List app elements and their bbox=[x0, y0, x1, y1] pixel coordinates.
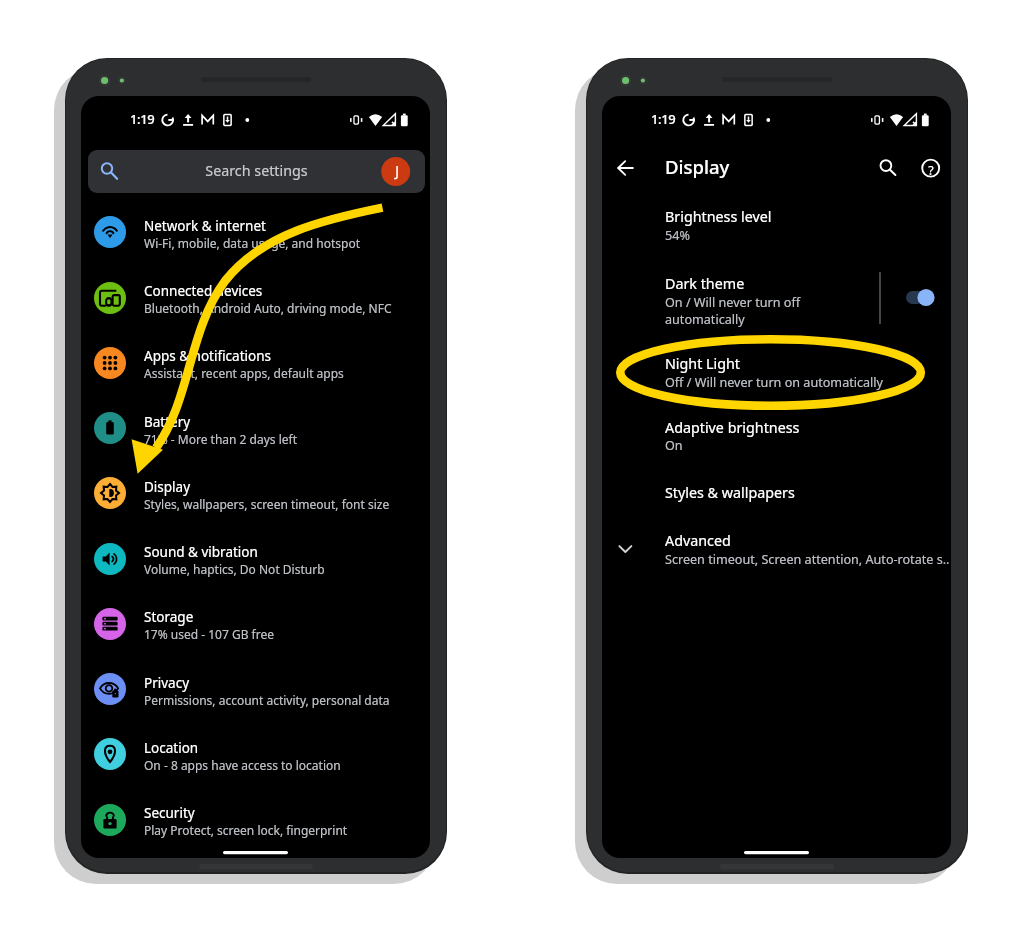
button[interactable] bbox=[81, 788, 430, 852]
staticText: ? bbox=[923, 162, 939, 180]
staticText: 1:19 bbox=[651, 110, 691, 129]
button[interactable] bbox=[602, 350, 951, 396]
staticText: 54% bbox=[665, 227, 945, 245]
button[interactable] bbox=[602, 530, 951, 576]
staticText: On bbox=[665, 437, 945, 455]
staticText: Permissions, account activity, personal … bbox=[144, 692, 434, 709]
button[interactable] bbox=[81, 722, 430, 786]
staticText: Screen timeout, Screen attention, Auto-r… bbox=[665, 551, 955, 569]
button[interactable] bbox=[81, 200, 430, 264]
button[interactable] bbox=[602, 270, 951, 316]
staticText: Display bbox=[144, 478, 434, 498]
staticText: Sound & vibration bbox=[144, 543, 434, 563]
button[interactable] bbox=[81, 331, 430, 395]
staticText: Brightness level bbox=[665, 207, 945, 228]
button[interactable] bbox=[602, 204, 951, 250]
button[interactable] bbox=[602, 415, 951, 461]
button[interactable] bbox=[81, 461, 430, 525]
button[interactable]: Search settings bbox=[88, 150, 425, 193]
button[interactable]: Search bbox=[866, 146, 910, 190]
staticText: Display bbox=[665, 154, 865, 181]
staticText: On / Will never turn off bbox=[665, 294, 865, 312]
button[interactable]: Back bbox=[608, 146, 652, 190]
staticText: On - 8 apps have access to location bbox=[144, 757, 434, 774]
staticText: Network & internet bbox=[144, 217, 434, 237]
staticText: Dark theme bbox=[665, 274, 865, 295]
staticText: Assistant, recent apps, default apps bbox=[144, 365, 434, 382]
staticText: automatically bbox=[665, 311, 865, 329]
staticText: Search settings bbox=[88, 161, 425, 182]
staticText: Wi-Fi, mobile, data usage, and hotspot bbox=[144, 235, 434, 252]
button[interactable] bbox=[81, 657, 430, 721]
staticText: Off / Will never turn on automatically bbox=[665, 374, 945, 392]
staticText: Volume, haptics, Do Not Disturb bbox=[144, 561, 434, 578]
staticText: Privacy bbox=[144, 674, 434, 694]
staticText: Apps & notifications bbox=[144, 347, 434, 367]
staticText: Advanced bbox=[665, 531, 945, 552]
staticText: Connected devices bbox=[144, 282, 434, 302]
button[interactable] bbox=[81, 592, 430, 656]
staticText: Adaptive brightness bbox=[665, 418, 945, 439]
button[interactable]: Help bbox=[908, 146, 952, 190]
staticText: 1:19 bbox=[130, 110, 170, 129]
staticText: Styles, wallpapers, screen timeout, font… bbox=[144, 496, 434, 513]
staticText: Storage bbox=[144, 608, 434, 628]
staticText: Bluetooth, Android Auto, driving mode, N… bbox=[144, 300, 434, 317]
button[interactable] bbox=[81, 266, 430, 330]
button[interactable] bbox=[602, 481, 951, 527]
staticText: Play Protect, screen lock, fingerprint bbox=[144, 822, 434, 839]
staticText: 17% used - 107 GB free bbox=[144, 626, 434, 643]
staticText: Location bbox=[144, 739, 434, 759]
staticText: J bbox=[386, 162, 408, 182]
staticText: Styles & wallpapers bbox=[665, 483, 945, 504]
staticText: Battery bbox=[144, 413, 434, 433]
button[interactable] bbox=[81, 396, 430, 460]
button[interactable] bbox=[81, 527, 430, 591]
staticText: Night Light bbox=[665, 354, 945, 375]
staticText: 71% - More than 2 days left bbox=[144, 431, 434, 448]
staticText: Security bbox=[144, 804, 434, 824]
